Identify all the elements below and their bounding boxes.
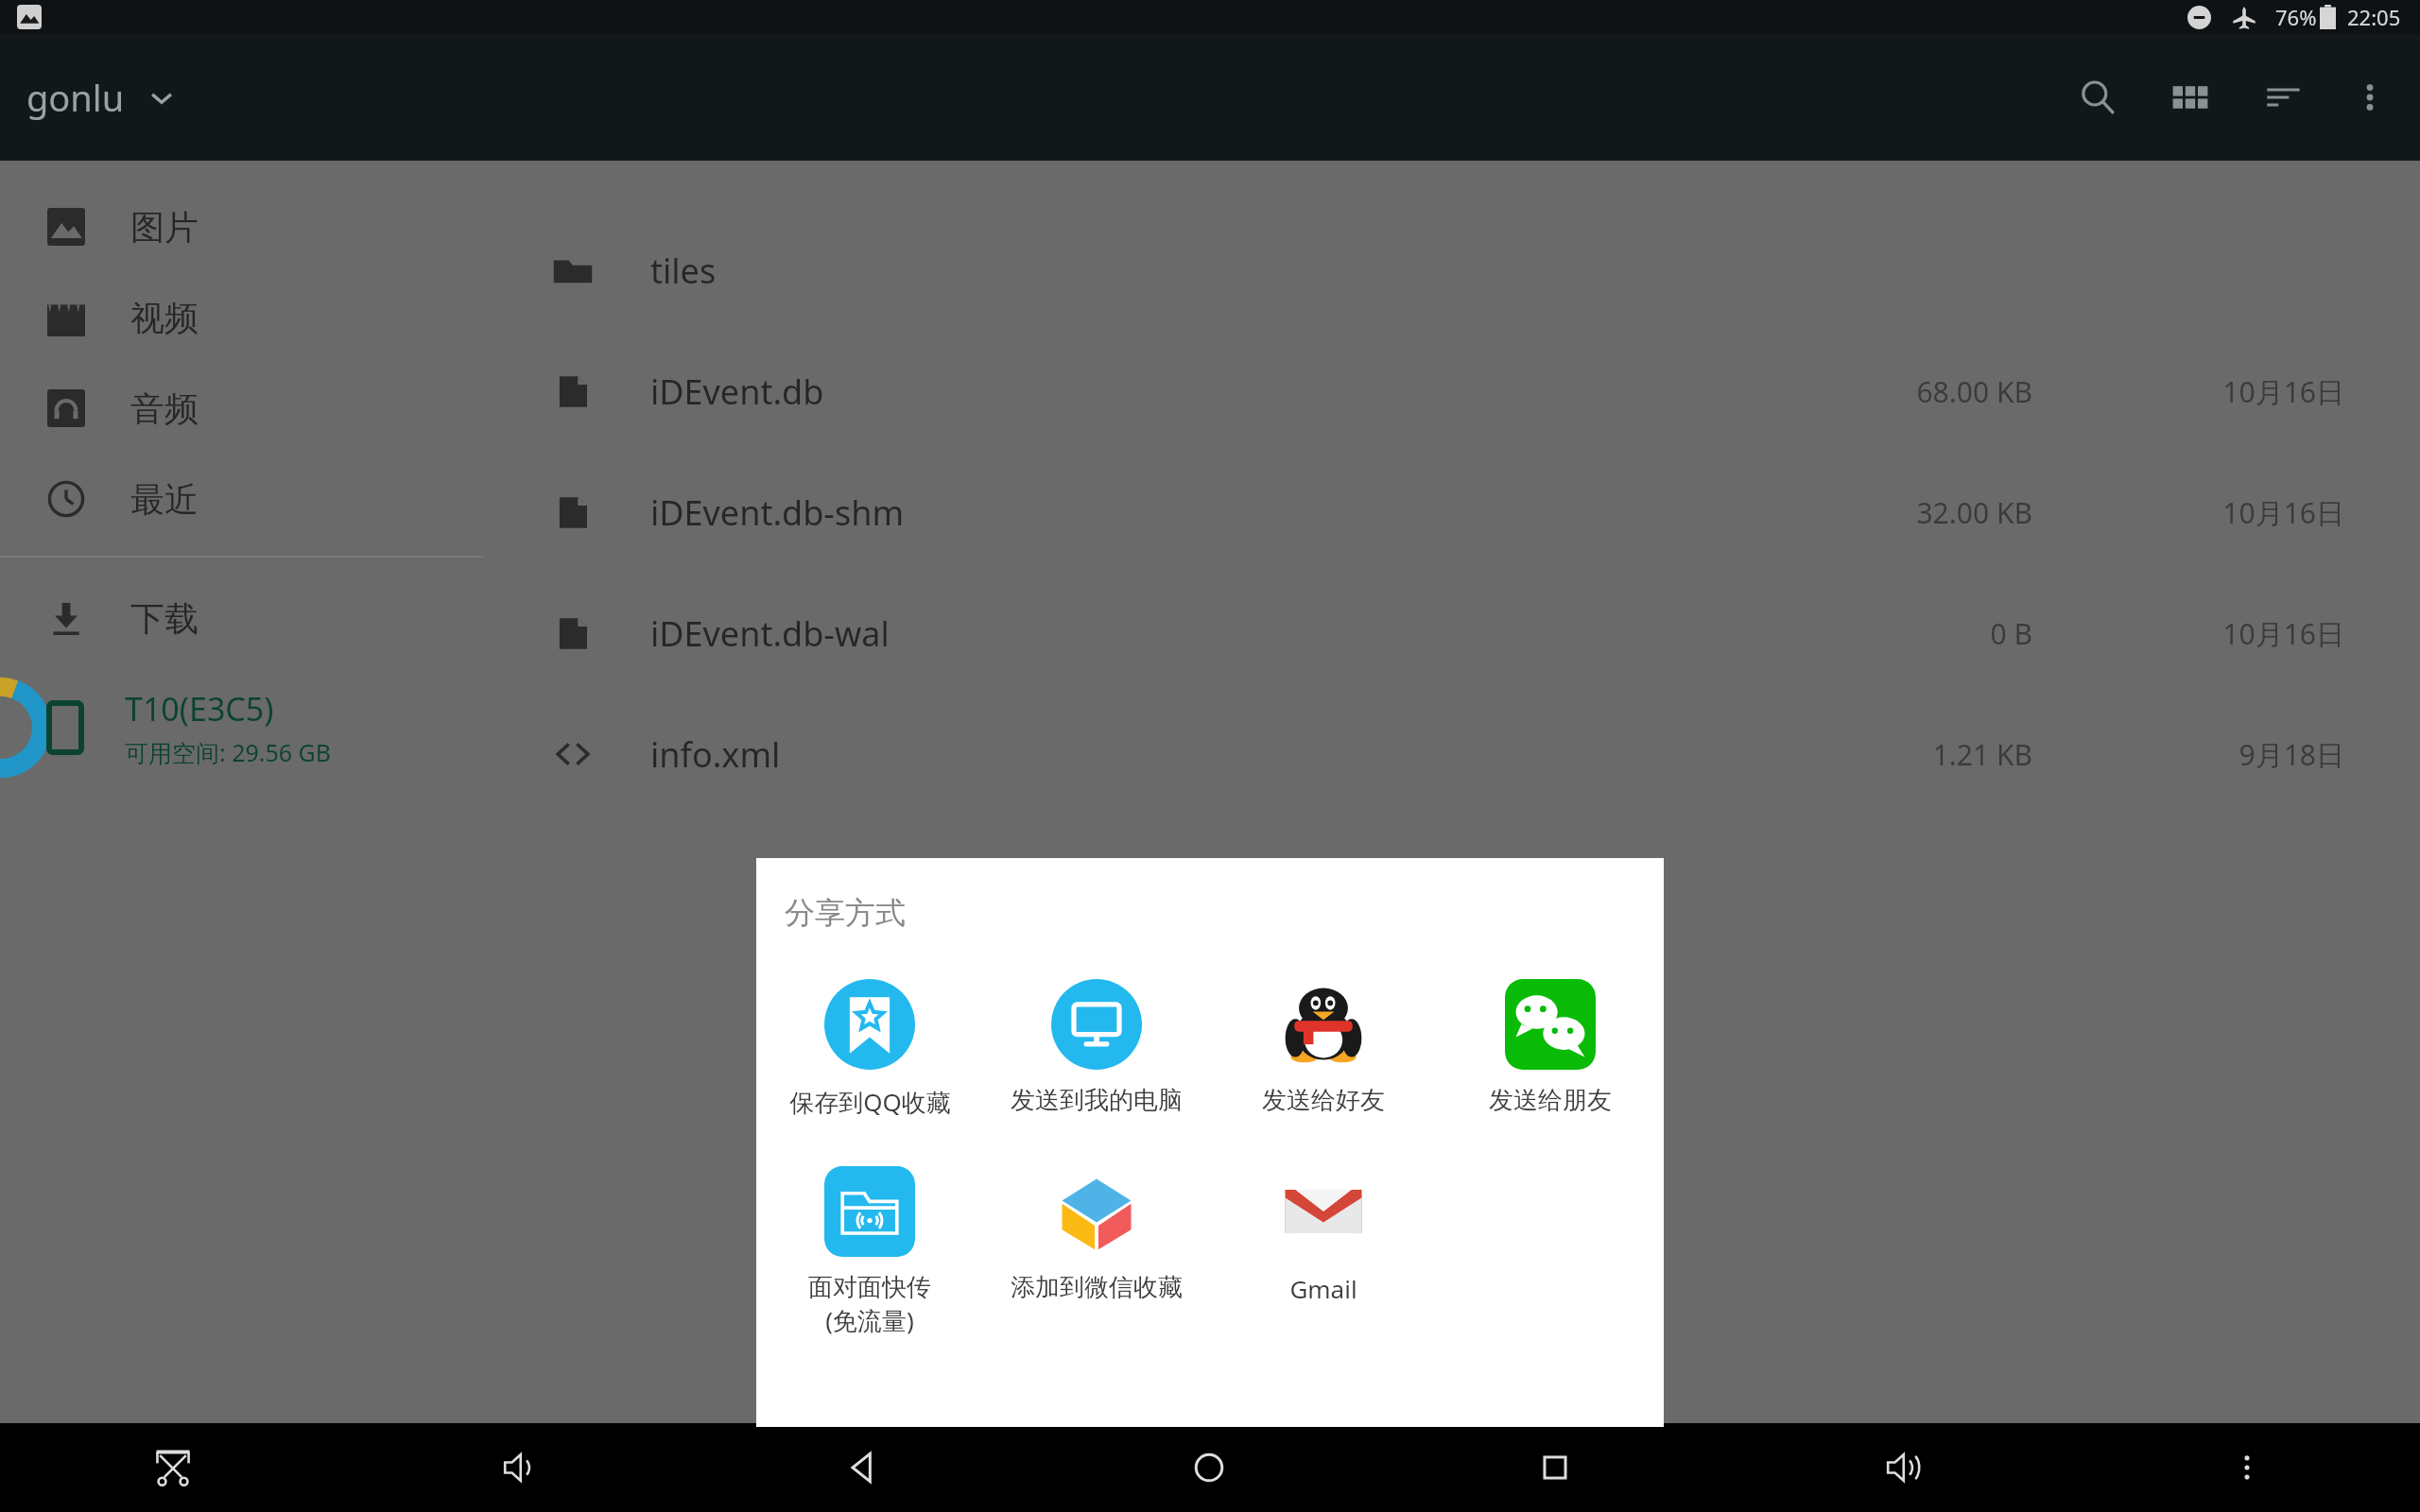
staticText: 76%	[2275, 3, 2317, 31]
staticText: 9月18日	[2238, 735, 2344, 774]
staticText: 发送到我的电脑	[1011, 1085, 1183, 1116]
staticText: 1.21 KB	[1932, 735, 2032, 774]
button[interactable]: Search	[2068, 68, 2127, 127]
button[interactable]: 最近	[0, 454, 484, 544]
staticText: 面对面快传 (免流量)	[808, 1272, 931, 1336]
staticText: info.xml	[650, 731, 1720, 778]
button[interactable]: Grid view	[2161, 68, 2220, 127]
staticText: T10(E3C5)	[125, 687, 274, 730]
button[interactable]: Sort	[2254, 68, 2312, 127]
button[interactable]: 保存到QQ收藏	[756, 975, 983, 1123]
button[interactable]: 发送到我的电脑	[983, 975, 1210, 1120]
button[interactable]: Home	[1036, 1423, 1382, 1512]
button[interactable]: info.xml	[484, 694, 2420, 815]
button[interactable]: 视频	[0, 272, 484, 363]
button[interactable]: iDEvent.db-wal	[484, 573, 2420, 694]
staticText: 22:05	[2347, 3, 2401, 31]
button[interactable]: Volume down	[345, 1423, 690, 1512]
staticText: iDEvent.db-wal	[650, 610, 1720, 657]
staticText: 发送给朋友	[1489, 1085, 1612, 1116]
button[interactable]: T10(E3C5)	[0, 663, 484, 792]
button[interactable]: 发送给好友	[1210, 975, 1437, 1120]
button[interactable]: Gmail	[1210, 1162, 1437, 1309]
button[interactable]: Back	[690, 1423, 1036, 1512]
staticText: 分享方式	[785, 894, 906, 932]
staticText: tiles	[650, 248, 1720, 294]
staticText: 10月16日	[2222, 493, 2344, 532]
staticText: 下载	[130, 597, 199, 640]
button[interactable]: iDEvent.db	[484, 331, 2420, 452]
button[interactable]: tiles	[484, 210, 2420, 331]
button[interactable]: 图片	[0, 181, 484, 272]
staticText: 图片	[130, 206, 199, 249]
staticText: 添加到微信收藏	[1011, 1272, 1183, 1303]
staticText: 10月16日	[2222, 372, 2344, 411]
staticText: 0 B	[1990, 614, 2032, 653]
staticText: 视频	[130, 297, 199, 339]
button[interactable]: More	[2074, 1423, 2420, 1512]
button[interactable]: More options	[2341, 68, 2399, 127]
staticText: 10月16日	[2222, 614, 2344, 653]
staticText: iDEvent.db	[650, 369, 1720, 415]
button[interactable]: Recent apps	[1382, 1423, 1728, 1512]
staticText: gonlu	[26, 73, 125, 122]
button[interactable]: Volume up	[1728, 1423, 2074, 1512]
staticText: iDEvent.db-shm	[650, 490, 1720, 536]
staticText: 68.00 KB	[1916, 372, 2032, 411]
staticText: Gmail	[1289, 1272, 1357, 1305]
staticText: 音频	[130, 387, 199, 430]
staticText: 发送给好友	[1262, 1085, 1385, 1116]
button[interactable]: 发送给朋友	[1437, 975, 1664, 1120]
button[interactable]: Screenshot	[0, 1423, 345, 1512]
button[interactable]: 添加到微信收藏	[983, 1162, 1210, 1307]
button[interactable]: gonlu	[13, 63, 187, 131]
staticText: 32.00 KB	[1916, 493, 2032, 532]
button[interactable]: 下载	[0, 573, 484, 663]
button[interactable]: 面对面快传 (免流量)	[756, 1162, 983, 1340]
staticText: 保存到QQ收藏	[789, 1085, 951, 1119]
staticText: 可用空间: 29.56 GB	[125, 736, 332, 768]
button[interactable]: iDEvent.db-shm	[484, 452, 2420, 573]
staticText: 最近	[130, 478, 199, 521]
button[interactable]: 音频	[0, 363, 484, 454]
